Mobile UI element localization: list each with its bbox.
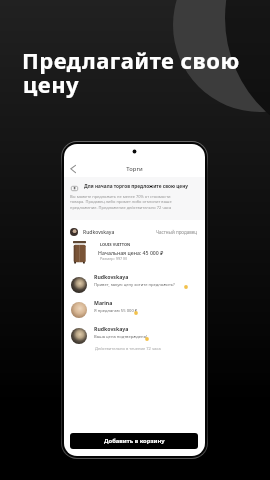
staticText: Действительно в течение 72 часа	[95, 346, 161, 352]
staticText: Начальная цена: 45 000 ₽	[98, 249, 164, 256]
staticText: Я предлагаю 55 000 ₽	[94, 308, 138, 314]
staticText: Rudkovskaya	[83, 229, 115, 236]
staticText: Marina	[94, 299, 113, 306]
staticText: Торги	[64, 165, 205, 173]
staticText: Размер: 997 М	[100, 256, 127, 261]
staticText: Ваша цена подтверждена!	[94, 334, 148, 340]
button[interactable]	[70, 301, 200, 319]
staticText: Предлагайте свою	[22, 45, 240, 75]
staticText: Добавить в корзину	[104, 437, 165, 445]
button[interactable]	[70, 327, 200, 345]
staticText: Вы можете предложить не менее 70% от сто…	[70, 194, 195, 211]
staticText: LOUIS VUITTON	[100, 242, 131, 247]
staticText: Rudkovskaya	[94, 325, 129, 332]
button[interactable]	[69, 226, 201, 238]
button[interactable]	[70, 276, 200, 294]
button[interactable]: Добавить в корзину	[70, 433, 198, 449]
staticText: цену	[23, 69, 80, 99]
staticText: Для начала торгов предложите свою цену	[84, 183, 188, 189]
button[interactable]: Назад	[66, 160, 83, 177]
staticText: Частный продавец	[64, 229, 197, 235]
staticText: Rudkovskaya	[94, 273, 129, 280]
staticText: Привет, какую цену хотите предложить?	[94, 282, 175, 288]
